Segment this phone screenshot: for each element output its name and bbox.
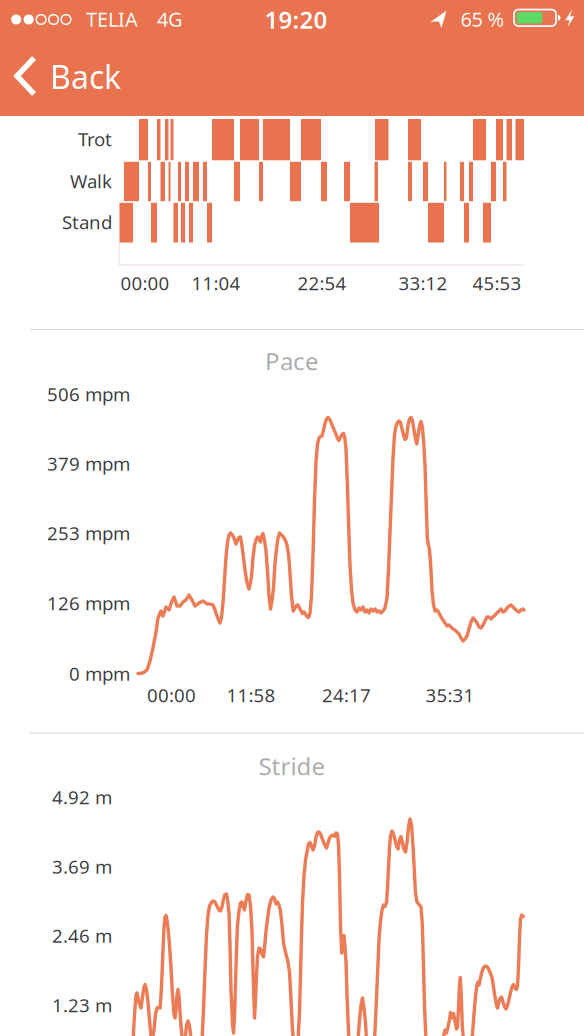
button[interactable]: Back — [0, 37, 150, 115]
staticText: 19:20 — [264, 4, 327, 35]
staticText: Pace — [265, 345, 319, 377]
staticText: 33:12 — [398, 271, 447, 295]
staticText: 00:00 — [147, 683, 196, 707]
staticText: 4G — [157, 6, 183, 32]
staticText: 65 % — [460, 6, 504, 32]
staticText: Walk — [70, 169, 112, 193]
staticText: 00:00 — [120, 271, 169, 295]
staticText: 0 mpm — [69, 661, 130, 686]
staticText: 22:54 — [297, 271, 346, 295]
staticText: 1.23 m — [52, 993, 112, 1017]
staticText: Back — [50, 55, 121, 98]
staticText: 253 mpm — [47, 521, 130, 545]
staticText: 45:53 — [472, 271, 521, 295]
staticText: 2.46 m — [52, 923, 112, 948]
staticText: 506 mpm — [47, 382, 130, 406]
staticText: 126 mpm — [47, 591, 130, 615]
staticText: 4.92 m — [52, 785, 112, 809]
staticText: 35:31 — [425, 683, 474, 707]
staticText: 11:58 — [226, 683, 275, 707]
staticText: 24:17 — [322, 683, 371, 707]
staticText: 11:04 — [191, 271, 240, 295]
staticText: Stand — [62, 210, 112, 234]
staticText: Stride — [258, 750, 325, 782]
staticText: TELIA — [86, 6, 138, 32]
staticText: 379 mpm — [47, 451, 130, 476]
staticText: 3.69 m — [52, 854, 112, 879]
staticText: Trot — [78, 127, 112, 151]
